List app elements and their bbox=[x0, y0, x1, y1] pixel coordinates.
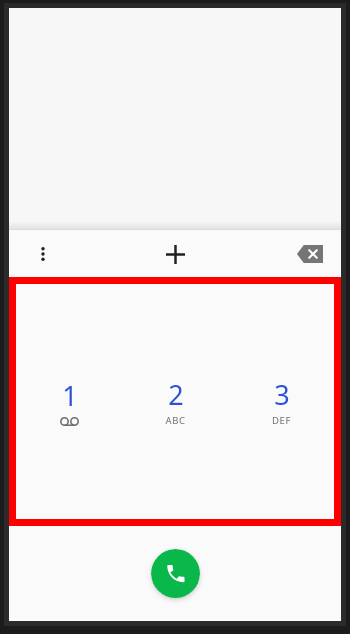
staticText: 2 bbox=[168, 376, 184, 413]
button[interactable]: More options bbox=[23, 234, 63, 274]
staticText: 1 bbox=[62, 377, 78, 414]
button[interactable]: Backspace bbox=[289, 233, 331, 275]
button[interactable]: Call bbox=[151, 549, 200, 598]
button[interactable]: Add plus bbox=[153, 232, 197, 276]
button[interactable]: 1 bbox=[16, 284, 122, 519]
button[interactable]: 3 bbox=[228, 284, 334, 519]
staticText: ABC bbox=[165, 414, 186, 427]
staticText: 3 bbox=[274, 376, 290, 413]
button[interactable]: 2 bbox=[122, 284, 228, 519]
staticText: DEF bbox=[272, 414, 291, 427]
